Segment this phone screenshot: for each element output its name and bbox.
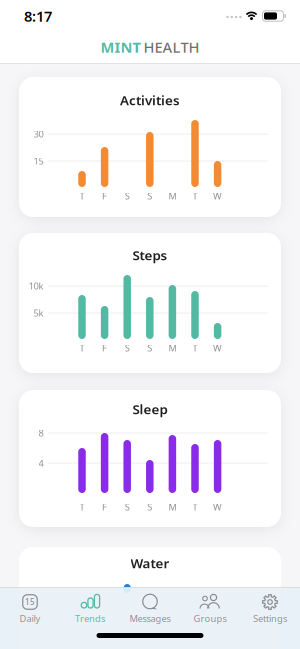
staticText: T <box>192 190 197 202</box>
staticText: S <box>147 342 152 354</box>
staticText: HEALTH <box>143 37 199 57</box>
staticText: 10k <box>28 280 43 292</box>
staticText: MINT <box>100 37 140 57</box>
staticText: Trends <box>75 612 105 625</box>
staticText: Messages <box>129 612 170 625</box>
staticText: F <box>102 501 107 513</box>
staticText: T <box>79 501 84 513</box>
button[interactable]: Settings <box>240 587 300 633</box>
staticText: M <box>168 342 176 354</box>
button[interactable]: Trends <box>60 587 120 633</box>
staticText: 8:17 <box>24 6 52 26</box>
staticText: 5k <box>33 307 43 319</box>
staticText: S <box>125 342 130 354</box>
staticText: 30 <box>33 128 43 140</box>
staticText: Groups <box>193 612 226 625</box>
staticText: Activities <box>120 91 180 109</box>
staticText: Settings <box>253 612 287 625</box>
staticText: T <box>192 501 197 513</box>
staticText: M <box>168 501 176 513</box>
staticText: S <box>147 190 152 202</box>
button[interactable]: Messages <box>120 587 180 633</box>
button[interactable]: 15 <box>0 587 60 633</box>
staticText: T <box>79 342 84 354</box>
staticText: W <box>213 501 222 513</box>
staticText: T <box>192 342 197 354</box>
staticText: F <box>102 190 107 202</box>
staticText: S <box>125 190 130 202</box>
staticText: Water <box>130 554 169 572</box>
staticText: 15 <box>33 155 43 167</box>
staticText: Steps <box>132 246 167 264</box>
staticText: Sleep <box>132 400 167 418</box>
staticText: 4 <box>38 457 43 469</box>
staticText: 15 <box>25 597 35 607</box>
staticText: S <box>125 501 130 513</box>
staticText: F <box>102 342 107 354</box>
staticText: Daily <box>19 612 40 625</box>
button[interactable]: Groups <box>180 587 240 633</box>
staticText: S <box>147 501 152 513</box>
staticText: W <box>213 342 222 354</box>
staticText: 8 <box>38 427 43 439</box>
staticText: M <box>168 190 176 202</box>
staticText: W <box>213 190 222 202</box>
staticText: T <box>79 190 84 202</box>
